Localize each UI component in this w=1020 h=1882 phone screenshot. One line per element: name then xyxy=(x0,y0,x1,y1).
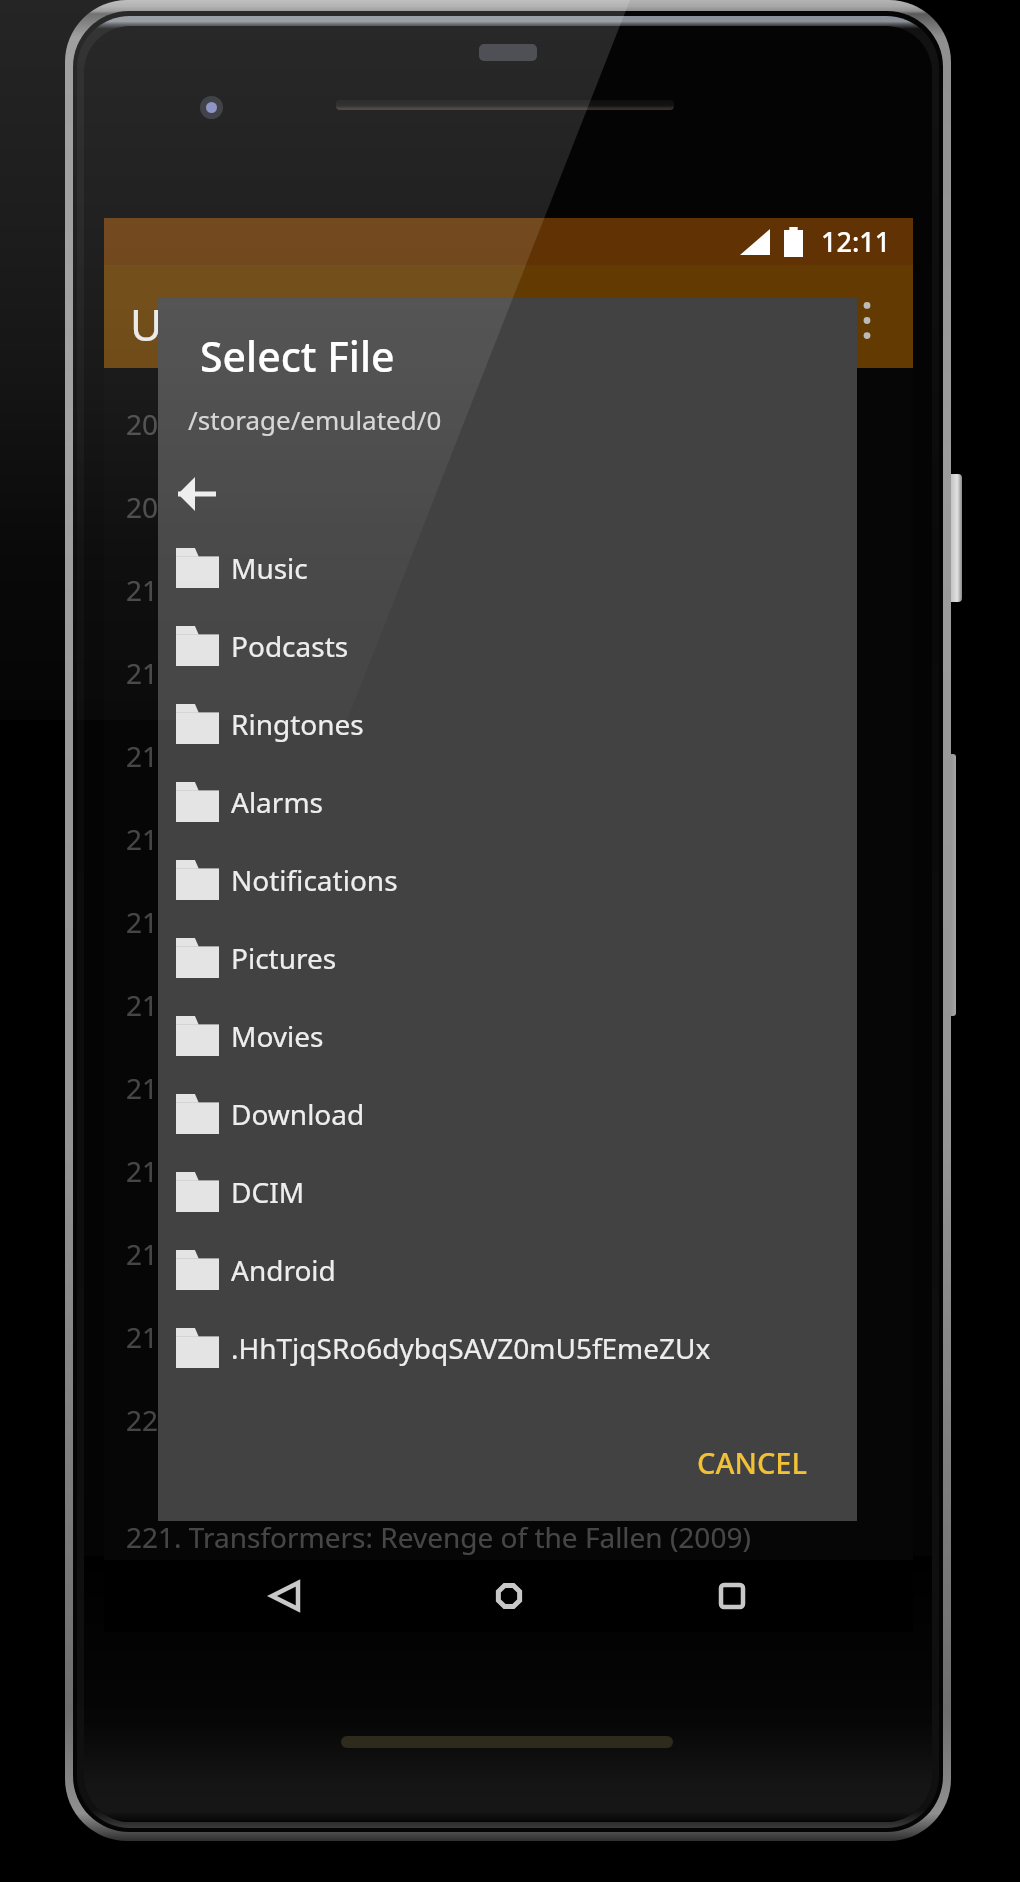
staticText: Pictures xyxy=(231,939,337,977)
staticText: Notifications xyxy=(231,861,398,899)
staticText: Music xyxy=(231,549,308,587)
staticText: 213. Shrek the Third (2007) xyxy=(126,820,478,858)
button[interactable]: Recent apps xyxy=(689,1560,775,1632)
button[interactable]: CANCEL xyxy=(681,1431,823,1494)
staticText: Ringtones xyxy=(231,705,364,743)
staticText: 208. The Lord of the Rings (1978) xyxy=(126,405,557,443)
button[interactable]: 209. Superman Returns (2006) xyxy=(104,465,913,548)
button[interactable]: .HhTjqSRo6dybqSAVZ0mU5fEmeZUx xyxy=(158,1309,857,1387)
staticText: 220. The Incredible Hulk (2008) xyxy=(126,1401,533,1439)
staticText: 12:11 xyxy=(821,223,891,260)
button[interactable]: More options xyxy=(821,265,913,368)
staticText: Select File xyxy=(200,328,395,384)
staticText: UMPlayer xyxy=(130,294,331,354)
button[interactable]: 219. Iron Man (2008) xyxy=(104,1295,913,1378)
button[interactable]: Movies xyxy=(158,997,857,1075)
staticText: 219. Iron Man (2008) xyxy=(126,1318,398,1356)
staticText: Android xyxy=(231,1251,336,1289)
staticText: 211. Ghost Rider (2007) xyxy=(126,654,432,692)
button[interactable]: 220. The Incredible Hulk (2008) xyxy=(104,1378,913,1461)
button[interactable]: 216. The Bourne Ultimatum (2007) xyxy=(104,1046,913,1129)
staticText: Alarms xyxy=(231,783,323,821)
staticText: 217. National Treasure (2007) xyxy=(126,1152,510,1190)
button[interactable]: 208. The Lord of the Rings (1978) xyxy=(104,382,913,465)
button[interactable]: DCIM xyxy=(158,1153,857,1231)
button[interactable]: Music xyxy=(158,529,857,607)
button[interactable]: 218. I Am Legend (2007) xyxy=(104,1212,913,1295)
button[interactable]: 215. The Simpsons Movie (2007) xyxy=(104,963,913,1046)
button[interactable]: Up one level xyxy=(158,459,857,529)
button[interactable]: 210. Night at the Museum (2006) xyxy=(104,548,913,631)
button[interactable]: 213. Shrek the Third (2007) xyxy=(104,797,913,880)
button[interactable]: Download xyxy=(158,1075,857,1153)
button[interactable]: Home xyxy=(466,1560,552,1632)
button[interactable]: Notifications xyxy=(158,841,857,919)
button[interactable]: 221. Transformers: Revenge of the Fallen… xyxy=(104,1495,913,1578)
button[interactable]: 211. Ghost Rider (2007) xyxy=(104,631,913,714)
staticText: Download xyxy=(231,1095,365,1133)
staticText: 212. Spider-Man 3 (2007) xyxy=(126,737,453,775)
staticText: Podcasts xyxy=(231,627,349,665)
button[interactable]: Back xyxy=(242,1560,328,1632)
staticText: 218. I Am Legend (2007) xyxy=(126,1235,444,1273)
button[interactable]: 212. Spider-Man 3 (2007) xyxy=(104,714,913,797)
button[interactable]: Alarms xyxy=(158,763,857,841)
staticText: CANCEL xyxy=(697,1443,807,1482)
staticText: 214. Live Free or Die Hard (2007) xyxy=(126,903,552,941)
button[interactable]: Android xyxy=(158,1231,857,1309)
button[interactable]: 217. National Treasure (2007) xyxy=(104,1129,913,1212)
staticText: .HhTjqSRo6dybqSAVZ0mU5fEmeZUx xyxy=(231,1329,711,1367)
button[interactable]: Pictures xyxy=(158,919,857,997)
button[interactable]: Podcasts xyxy=(158,607,857,685)
staticText: 210. Night at the Museum (2006) xyxy=(126,571,557,609)
button[interactable]: 214. Live Free or Die Hard (2007) xyxy=(104,880,913,963)
button[interactable]: UMPlayer xyxy=(104,265,913,368)
staticText: 216. The Bourne Ultimatum (2007) xyxy=(126,1069,578,1107)
staticText: 209. Superman Returns (2006) xyxy=(126,488,524,526)
button[interactable]: Ringtones xyxy=(158,685,857,763)
staticText: 215. The Simpsons Movie (2007) xyxy=(126,986,547,1024)
staticText: Movies xyxy=(231,1017,324,1055)
staticText: 221. Transformers: Revenge of the Fallen… xyxy=(126,1518,751,1556)
staticText: /storage/emulated/0 xyxy=(188,402,442,437)
staticText: DCIM xyxy=(231,1173,305,1211)
